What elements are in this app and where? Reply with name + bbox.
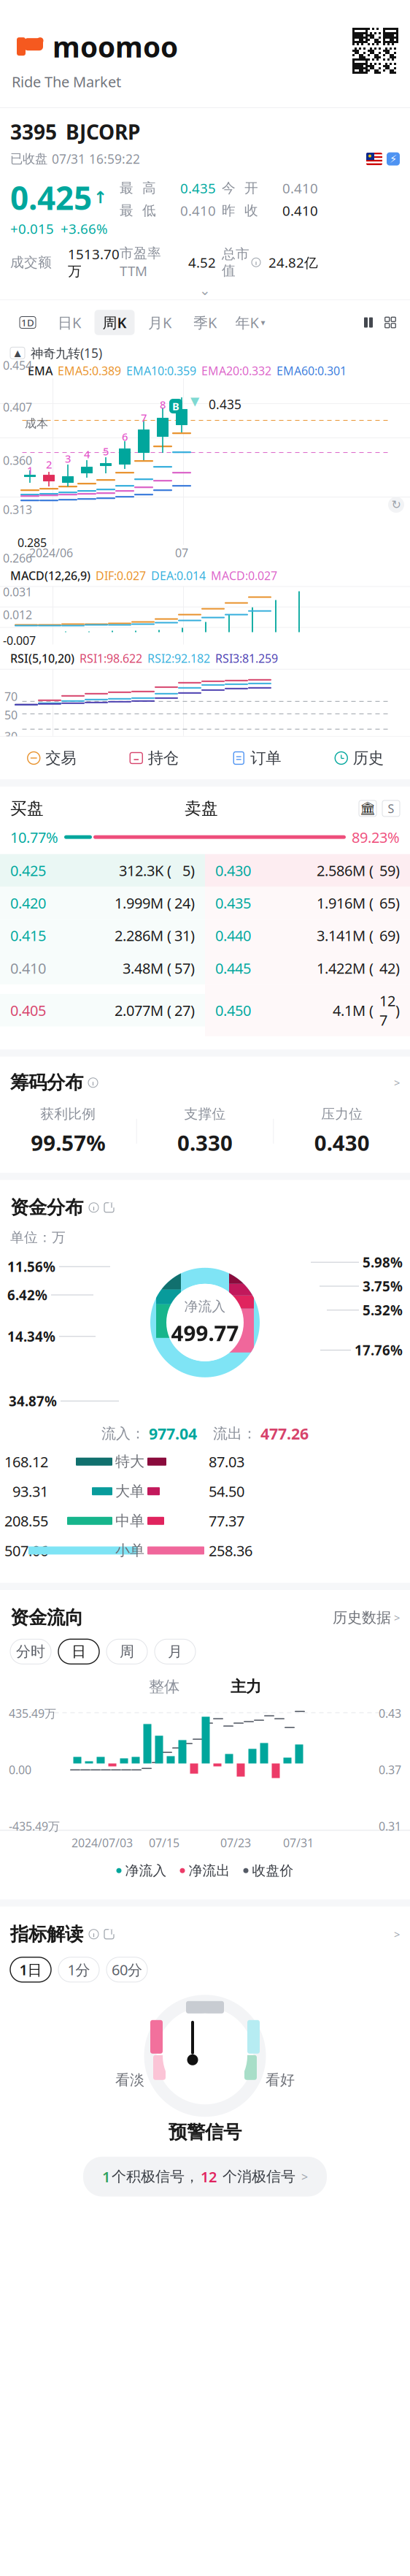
button[interactable]: 周 — [107, 1639, 147, 1664]
button[interactable]: 日 — [58, 1639, 99, 1664]
staticText: EMA5:0.389 — [58, 363, 121, 378]
staticText: 单位：万 — [10, 1229, 66, 1246]
button[interactable]: 1日 — [10, 1957, 51, 1982]
staticText: 指标解读 — [10, 1923, 83, 1946]
staticText: 主力 — [231, 1677, 261, 1696]
staticText: ⌄ — [199, 283, 211, 298]
button[interactable]: 交易 — [0, 737, 102, 779]
staticText: 8 — [160, 397, 166, 412]
staticText: 27 — [174, 1001, 190, 1020]
button[interactable]: 订单 — [205, 737, 307, 779]
staticText: BJCORP — [66, 118, 140, 145]
staticText: 历史 — [353, 748, 384, 768]
button[interactable]: 历史 — [307, 737, 410, 779]
staticText: ↻ — [391, 498, 401, 511]
staticText: 2024/07/03 — [71, 1835, 133, 1851]
staticText: 0.407 — [3, 399, 32, 415]
staticText: EMA — [28, 363, 53, 378]
staticText: 7 — [141, 411, 147, 425]
staticText: 成交额 — [10, 254, 52, 271]
button[interactable]: 分时 — [10, 1639, 51, 1664]
staticText: 看淡 — [115, 2071, 144, 2089]
staticText: -435.49万 — [9, 1818, 60, 1834]
button[interactable]: K线样式 — [357, 314, 379, 330]
staticText: 0.420 — [10, 893, 46, 913]
button[interactable]: 分享 — [104, 1203, 114, 1212]
staticText: 12 — [201, 2167, 217, 2186]
staticText: 07/31 16:59:22 — [52, 151, 140, 167]
staticText: 1日 — [19, 1960, 42, 1979]
staticText: 0.31 — [379, 1818, 401, 1834]
staticText: 年K — [235, 313, 259, 332]
staticText: 中单 — [115, 1512, 144, 1530]
staticText: 10.77% — [10, 827, 58, 847]
button[interactable]: 日K — [50, 310, 89, 335]
staticText: 208.55 — [4, 1511, 48, 1531]
staticText: ) — [395, 1001, 400, 1020]
button[interactable]: 收起 — [10, 347, 25, 359]
staticText: EMA20:0.332 — [201, 363, 271, 378]
staticText: 99.57% — [31, 1128, 105, 1157]
staticText: ) — [190, 926, 195, 945]
button[interactable]: 月 — [155, 1639, 196, 1664]
staticText: 订单 — [250, 748, 281, 768]
button[interactable]: 筹码分布 — [0, 1057, 410, 1106]
button[interactable]: 主力 — [231, 1677, 261, 1696]
button[interactable]: 60分 — [107, 1957, 147, 1982]
staticText: 🏛 — [360, 801, 376, 816]
staticText: 5.32% — [363, 1301, 403, 1319]
button[interactable]: 经纪队列 — [359, 800, 376, 816]
staticText: ( — [163, 861, 171, 880]
staticText: 日 — [71, 1643, 86, 1661]
button[interactable]: 月K — [140, 310, 179, 335]
staticText: Ride The Market — [12, 72, 121, 91]
button[interactable]: 1 — [83, 2157, 327, 2197]
staticText: 大单 — [115, 1482, 144, 1500]
staticText: 0.445 — [215, 958, 251, 978]
button[interactable]: 切换 — [382, 800, 400, 816]
staticText: 2.586M — [317, 861, 365, 880]
button[interactable]: 更多指标 — [379, 314, 401, 330]
staticText: 市盈率TTM — [120, 245, 161, 280]
staticText: 477.26 — [260, 1423, 309, 1444]
staticText: 个消极信号 — [218, 2168, 295, 2186]
button[interactable]: 季K — [185, 310, 225, 335]
staticText: 日K — [58, 313, 81, 332]
button[interactable]: 指标解读 — [0, 1907, 410, 1957]
staticText: 买盘 — [10, 798, 44, 819]
staticText: 24.82亿 — [268, 253, 318, 271]
button[interactable]: 整体 — [149, 1677, 179, 1696]
staticText: 0.435 — [180, 179, 216, 197]
staticText: 1D — [21, 316, 34, 329]
staticText: 0.430 — [215, 861, 251, 880]
staticText: 1.999M — [115, 893, 163, 913]
staticText: 54.50 — [209, 1482, 244, 1501]
staticText: DEA:0.014 — [151, 568, 206, 583]
staticText: 59 — [379, 861, 395, 880]
staticText: ) — [190, 893, 195, 913]
staticText: RSI3:81.259 — [215, 650, 278, 666]
staticText: 1 — [27, 463, 33, 477]
button[interactable]: 1分 — [58, 1957, 99, 1982]
staticText: 77.37 — [209, 1511, 244, 1531]
staticText: 1.916M — [317, 893, 365, 913]
staticText: ( — [365, 861, 374, 880]
staticText: 0.415 — [10, 926, 46, 945]
staticText: MACD(12,26,9) — [10, 568, 90, 583]
staticText: 支撑位 — [184, 1106, 226, 1122]
staticText: 看好 — [266, 2071, 295, 2089]
staticText: > — [394, 1076, 400, 1090]
button[interactable]: 持仓 — [102, 737, 205, 779]
button[interactable]: 年K — [235, 313, 265, 332]
button[interactable]: 周K — [94, 310, 135, 335]
staticText: 流入： — [101, 1425, 145, 1443]
staticText: 3 — [65, 451, 71, 466]
staticText: ▾ — [261, 317, 265, 327]
staticText: 31 — [174, 926, 190, 945]
button[interactable]: 资金流向 — [0, 1590, 410, 1639]
staticText: 5.98% — [363, 1253, 403, 1271]
button[interactable]: 1D — [20, 317, 36, 328]
staticText: 34.87% — [9, 1392, 57, 1410]
staticText: ) — [395, 861, 400, 880]
staticText: 已收盘 — [10, 151, 47, 167]
